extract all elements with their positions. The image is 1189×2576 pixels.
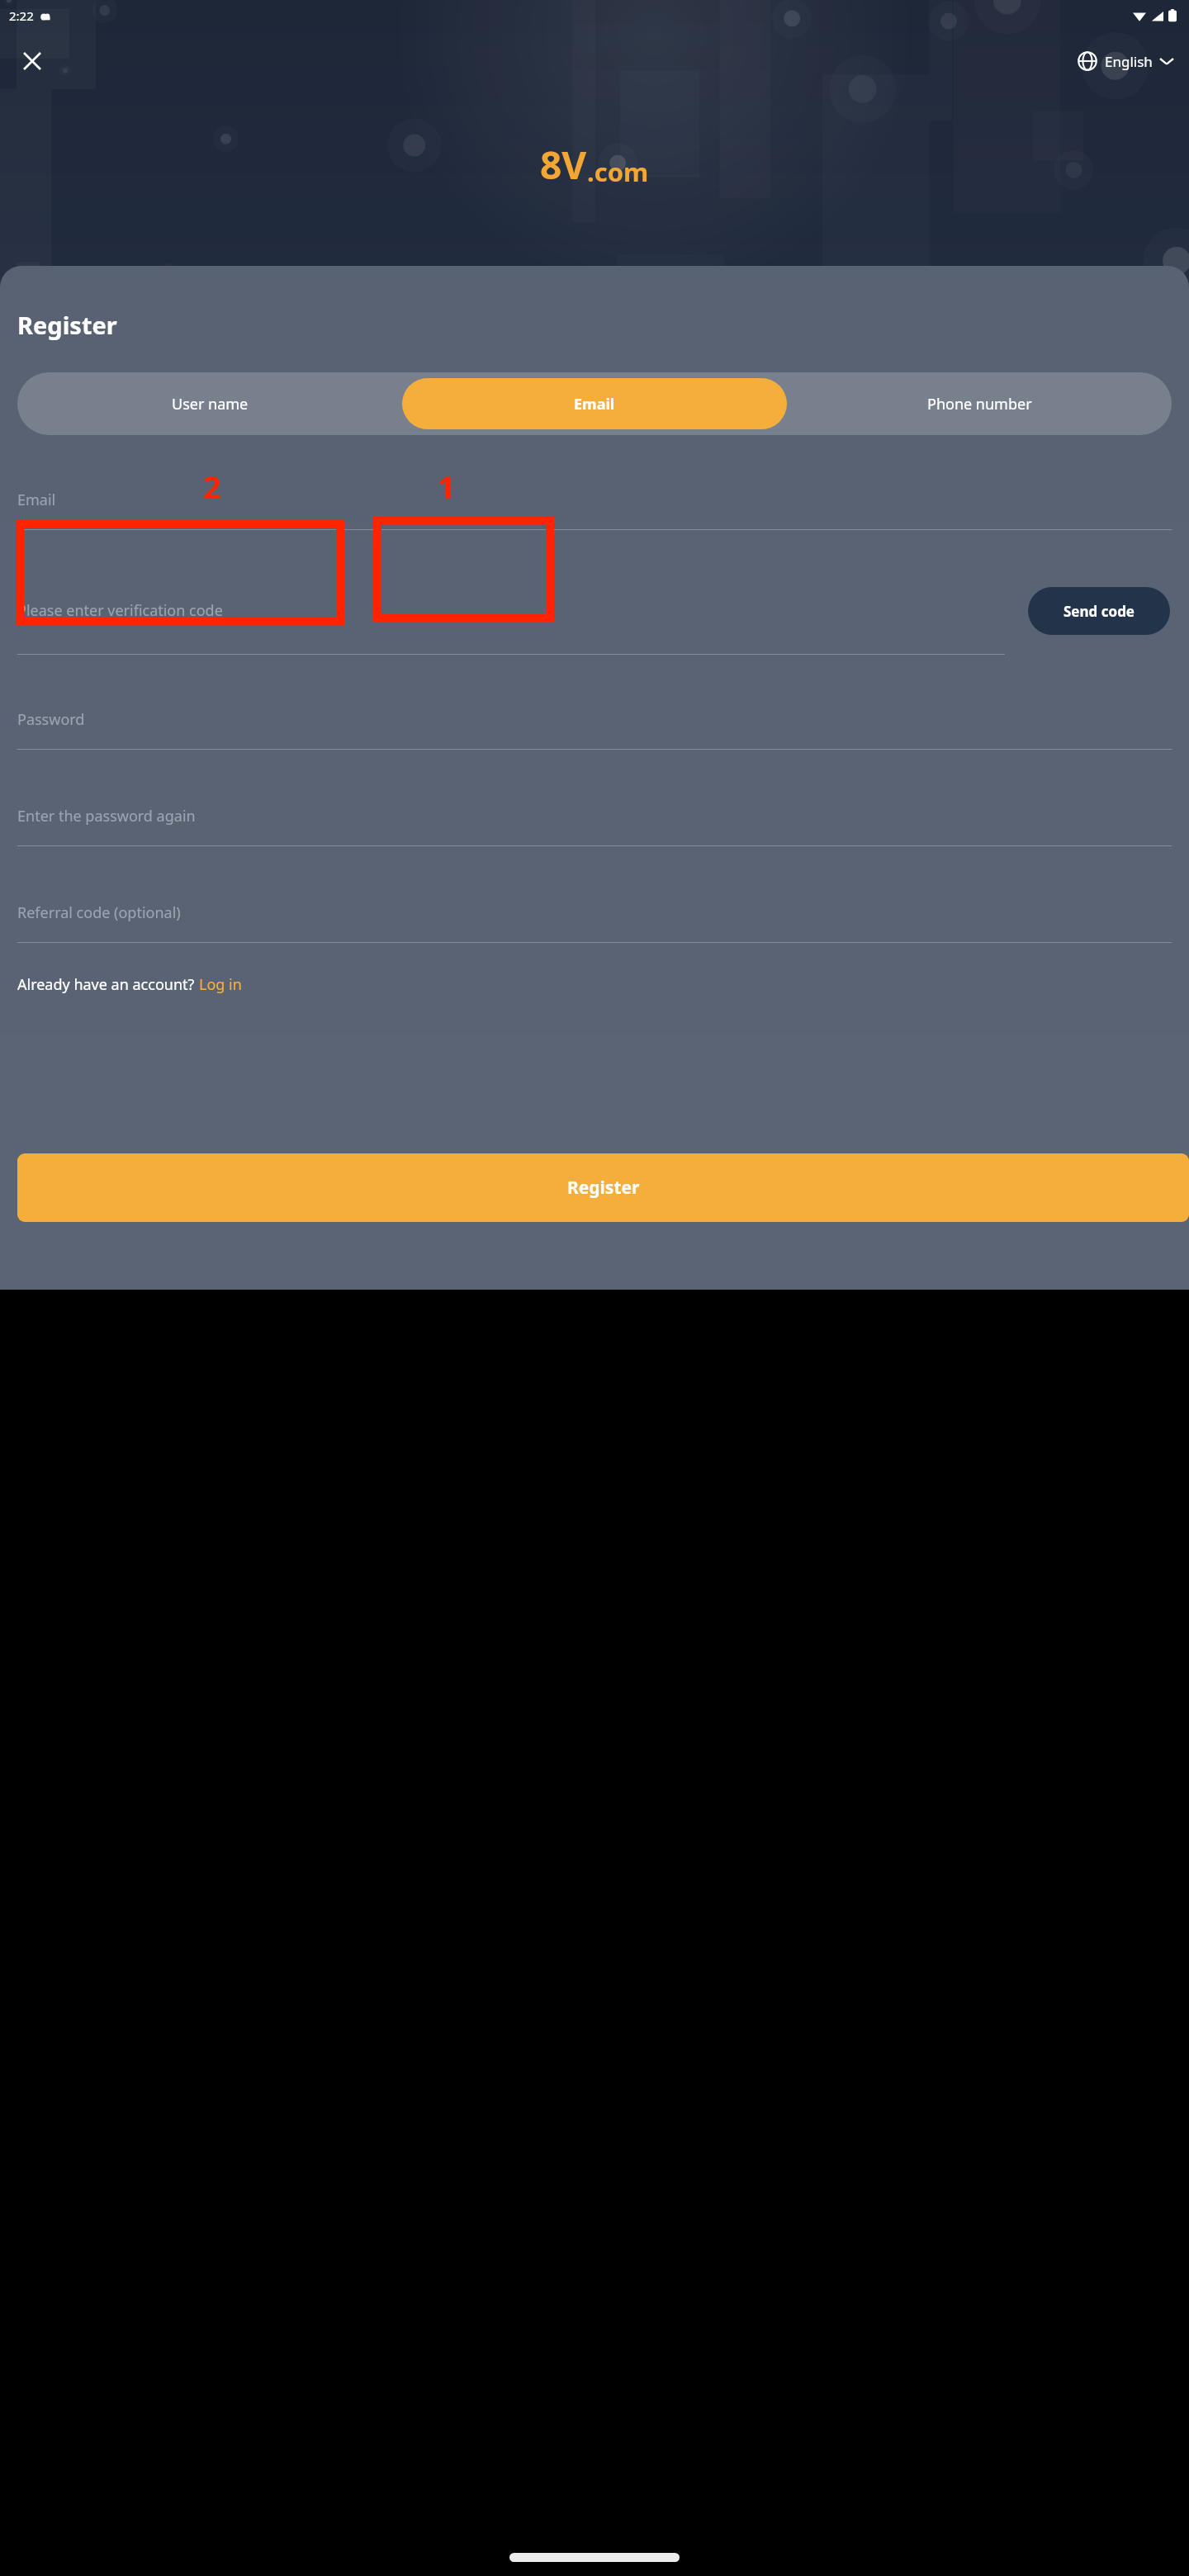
staticText: Register (567, 1176, 640, 1200)
staticText: 2:22 (9, 7, 34, 24)
staticText: Password (17, 709, 85, 730)
staticText: Please enter verification code (17, 600, 223, 621)
button[interactable]: Close (12, 40, 53, 82)
button[interactable]: User name (17, 372, 402, 435)
staticText: Phone number (927, 394, 1032, 414)
staticText: Enter the password again (17, 806, 196, 826)
staticText: 8V (540, 139, 587, 191)
staticText: Already have an account? (17, 974, 199, 995)
staticText: Referral code (optional) (17, 902, 181, 923)
staticText: English (1105, 52, 1153, 71)
staticText: Log in (199, 974, 242, 995)
button[interactable]: Referral code (optional) (17, 883, 1172, 943)
button[interactable]: Send code (1028, 587, 1170, 635)
button[interactable]: Send code button (373, 516, 554, 622)
staticText: 1 (438, 465, 456, 508)
staticText: User name (172, 394, 249, 414)
button[interactable]: Already have an account? (17, 974, 242, 995)
button[interactable]: Email (402, 378, 787, 429)
button[interactable]: Verification code field (16, 520, 344, 626)
button[interactable]: English (1073, 46, 1179, 76)
staticText: 2 (203, 465, 221, 508)
staticText: Send code (1063, 602, 1135, 621)
button[interactable]: Register (17, 1153, 1189, 1222)
staticText: Register (17, 309, 117, 341)
button[interactable]: Password (17, 689, 1172, 750)
staticText: Email (17, 490, 56, 510)
button[interactable]: Please enter verification code (17, 566, 1005, 655)
button[interactable]: Email (17, 470, 1172, 530)
staticText: .com (587, 154, 649, 189)
staticText: Email (574, 394, 615, 414)
button[interactable]: Phone number (787, 372, 1172, 435)
button[interactable]: Enter the password again (17, 786, 1172, 846)
